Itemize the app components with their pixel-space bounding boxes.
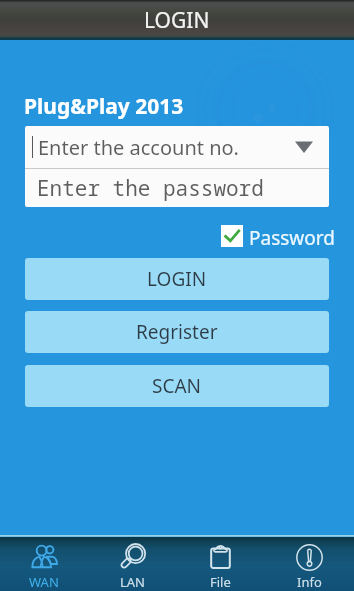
button[interactable]: LAN: [88, 537, 176, 591]
staticText: Enter the password: [37, 174, 264, 203]
staticText: Password: [249, 225, 335, 247]
staticText: Plug&Play 2013: [24, 92, 184, 121]
button[interactable]: LOGIN: [25, 258, 329, 300]
button[interactable]: Regrister: [25, 311, 329, 353]
staticText: File: [210, 573, 231, 591]
staticText: Regrister: [136, 319, 218, 345]
button[interactable]: Enter the account no.: [25, 126, 329, 168]
button[interactable]: File: [176, 537, 265, 591]
button[interactable]: Password: [221, 225, 335, 247]
staticText: LAN: [120, 573, 145, 591]
staticText: Info: [297, 573, 322, 591]
button[interactable]: SCAN: [25, 365, 329, 407]
staticText: LOGIN: [144, 6, 210, 35]
staticText: WAN: [29, 573, 59, 591]
button[interactable]: Enter the password: [25, 169, 329, 207]
button[interactable]: WAN: [0, 537, 88, 591]
staticText: Enter the account no.: [38, 134, 239, 161]
staticText: SCAN: [152, 373, 202, 399]
staticText: LOGIN: [147, 266, 207, 292]
button[interactable]: Info: [265, 537, 354, 591]
